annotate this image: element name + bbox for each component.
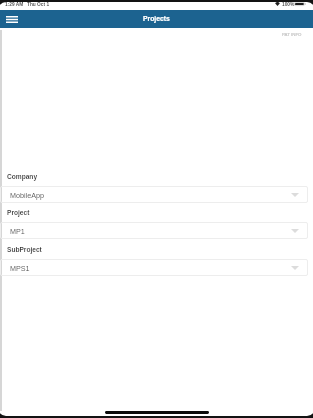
staticText: PAT INFO	[282, 32, 302, 37]
staticText: 100%	[282, 2, 295, 7]
staticText: Project	[7, 209, 30, 216]
staticText: SubProject	[7, 246, 42, 253]
staticText: MobileApp	[10, 191, 44, 199]
staticText: MPS1	[10, 264, 30, 272]
staticText: 1:29 AM	[5, 2, 24, 7]
staticText: Projects	[143, 15, 170, 23]
button[interactable]: MPS1	[0, 259, 308, 276]
staticText: MP1	[10, 227, 25, 235]
button[interactable]: MobileApp	[0, 186, 308, 203]
staticText: Thu Oct 1	[27, 2, 50, 7]
button[interactable]: Open navigation menu	[4, 12, 19, 27]
button[interactable]: MP1	[0, 222, 308, 239]
staticText: Company	[7, 173, 38, 180]
